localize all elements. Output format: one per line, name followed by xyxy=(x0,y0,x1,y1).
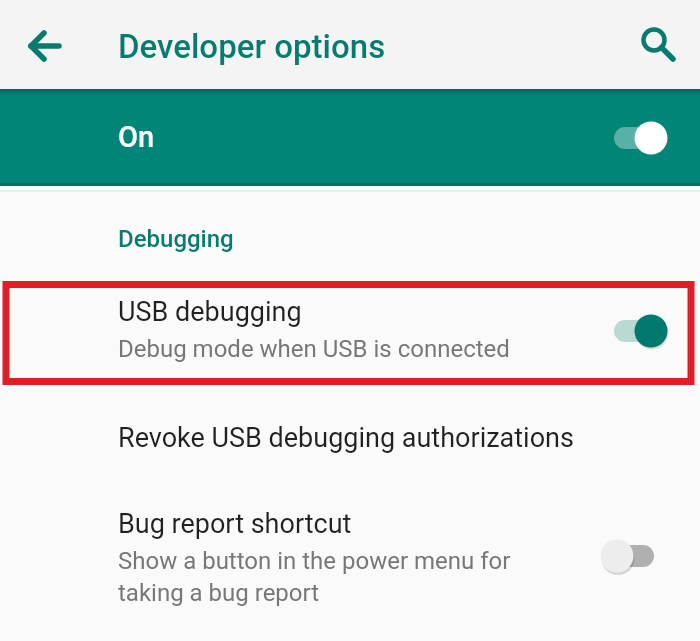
staticText: Bug report shortcut xyxy=(118,508,352,540)
button[interactable]: USB debugging xyxy=(0,288,700,380)
staticText: Revoke USB debugging authorizations xyxy=(118,422,574,454)
staticText: Debugging xyxy=(118,225,234,253)
staticText: On xyxy=(118,120,155,154)
button[interactable] xyxy=(21,22,69,70)
button[interactable]: Revoke USB debugging authorizations xyxy=(0,404,700,470)
button[interactable]: Bug report shortcut xyxy=(0,496,700,626)
staticText: Debug mode when USB is connected xyxy=(118,335,510,363)
staticText: Show a button in the power menu for taki… xyxy=(118,547,511,606)
staticText: Developer options xyxy=(118,27,386,66)
button[interactable]: On xyxy=(0,89,700,186)
button[interactable] xyxy=(612,314,668,348)
button[interactable] xyxy=(600,539,656,573)
staticText: USB debugging xyxy=(118,296,302,328)
button[interactable] xyxy=(634,16,682,64)
button[interactable] xyxy=(612,121,668,155)
